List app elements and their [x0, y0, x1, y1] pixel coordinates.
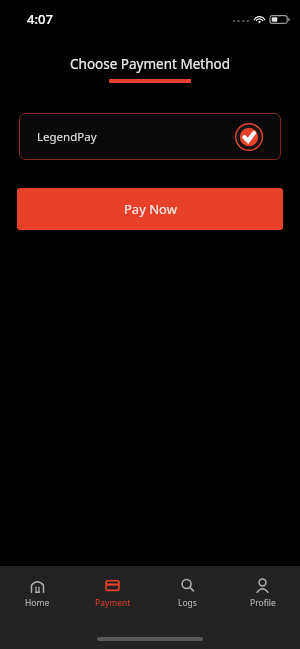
- staticText: Pay Now: [124, 200, 177, 218]
- staticText: Payment: [95, 597, 131, 609]
- staticText: Choose Payment Method: [0, 55, 300, 73]
- button[interactable]: Pay Now: [17, 188, 283, 230]
- other: Payment: [105, 578, 120, 593]
- staticText: Profile: [250, 597, 276, 609]
- button[interactable]: Profile: [225, 566, 300, 621]
- button[interactable]: LegendPay: [19, 113, 281, 160]
- staticText: 4:07: [27, 10, 53, 28]
- button[interactable]: Logs: [150, 566, 225, 621]
- staticText: Home: [25, 597, 50, 609]
- other: Home: [30, 578, 45, 593]
- other: Logs: [180, 578, 195, 593]
- button[interactable]: Payment: [75, 566, 150, 621]
- button[interactable]: Home: [0, 566, 75, 621]
- other: Profile: [255, 578, 270, 593]
- staticText: Logs: [178, 597, 197, 609]
- staticText: LegendPay: [37, 129, 97, 145]
